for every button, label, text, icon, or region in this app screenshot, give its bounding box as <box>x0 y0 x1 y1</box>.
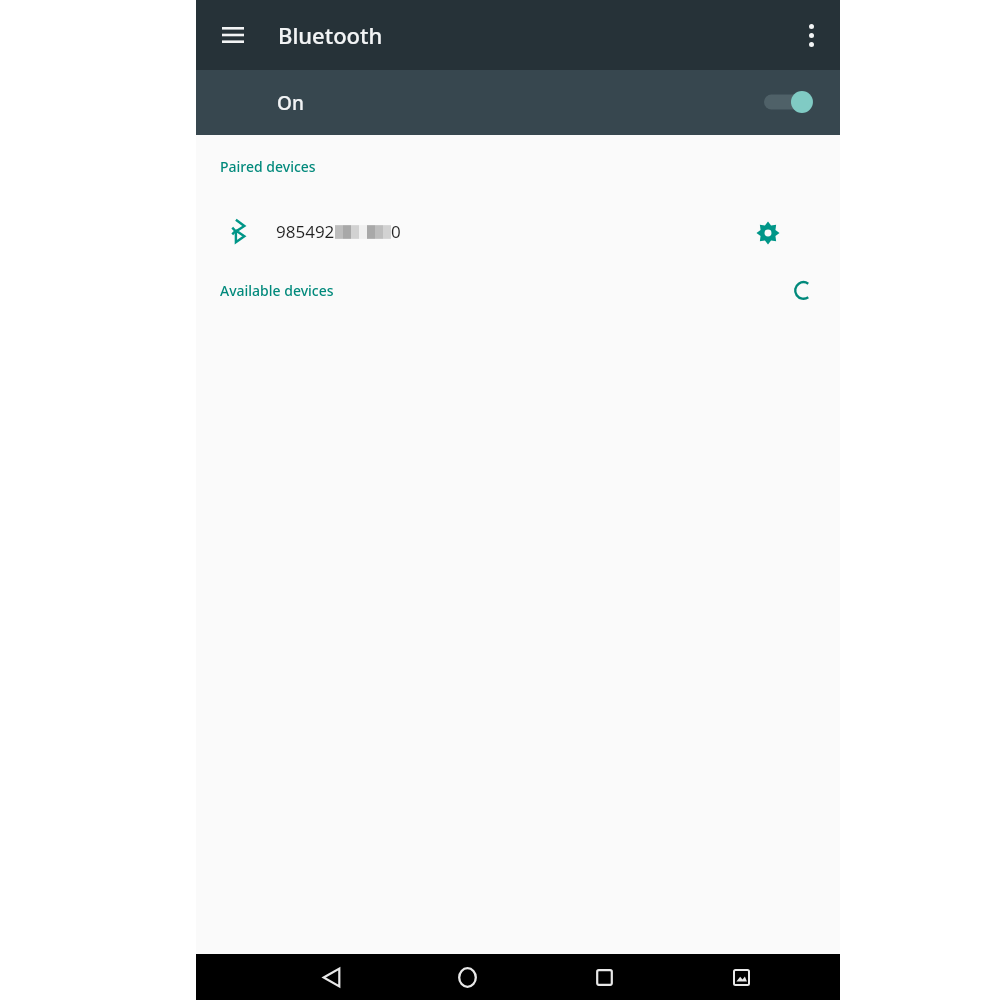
button[interactable]: On <box>196 70 840 135</box>
button[interactable]: Open navigation menu <box>214 16 252 54</box>
staticText: Available devices <box>220 281 334 300</box>
button[interactable]: Recent apps <box>587 960 621 994</box>
staticText: On <box>277 90 304 116</box>
staticText: 985492 <box>276 220 335 243</box>
button[interactable]: 985492 <box>196 209 840 255</box>
button[interactable]: Bluetooth on toggle <box>762 84 824 120</box>
staticText: 0 <box>391 220 401 243</box>
staticText: Bluetooth <box>278 20 383 50</box>
button[interactable]: Home <box>450 960 484 994</box>
button[interactable]: More options <box>790 14 832 56</box>
button[interactable]: Device settings <box>748 213 788 253</box>
button[interactable]: Back <box>314 960 348 994</box>
button[interactable]: Scanning for devices <box>786 275 820 305</box>
button[interactable]: Screenshot <box>724 960 758 994</box>
staticText: Paired devices <box>220 157 316 176</box>
